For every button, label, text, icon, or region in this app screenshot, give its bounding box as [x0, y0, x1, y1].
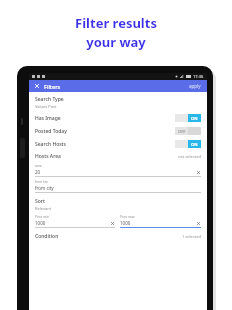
staticText: 20	[35, 169, 41, 175]
button[interactable]: Price max	[120, 215, 201, 228]
staticText: ON	[191, 116, 198, 121]
staticText: apply	[189, 83, 201, 89]
staticText: not selected	[178, 154, 201, 159]
staticText: ON	[191, 142, 198, 147]
staticText: Has Image	[35, 115, 61, 122]
button[interactable]: Sort	[35, 198, 201, 211]
staticText: Posted Today	[35, 128, 67, 135]
staticText: 1 selected	[182, 234, 201, 239]
staticText: Values Post	[35, 104, 57, 109]
staticText: OFF	[178, 129, 186, 134]
staticText: Condition	[35, 233, 59, 240]
staticText: your way	[86, 33, 146, 51]
button[interactable]: from km	[35, 180, 201, 193]
staticText: 1000	[35, 220, 46, 226]
staticText: area	[35, 164, 42, 168]
button[interactable]: Has Image	[35, 114, 201, 122]
staticText: Price min	[35, 215, 49, 219]
staticText: 17:36	[193, 74, 204, 79]
staticText: 1000	[120, 220, 131, 226]
button[interactable]: Clear	[196, 221, 201, 226]
staticText: Search Type	[35, 96, 64, 103]
staticText: Filters	[44, 83, 61, 90]
staticText: Price max	[120, 215, 135, 219]
button[interactable]: Hosts Area	[35, 153, 201, 160]
button[interactable]: apply	[187, 82, 203, 90]
staticText: from km	[35, 180, 48, 184]
button[interactable]: Close	[33, 82, 41, 90]
button[interactable]: Clear	[110, 221, 115, 226]
button[interactable]: Posted Today	[35, 127, 201, 135]
staticText: Search Hosts	[35, 141, 66, 148]
button[interactable]: Clear	[196, 170, 201, 175]
button[interactable]: area	[35, 164, 201, 177]
staticText: Hosts Area	[35, 153, 61, 160]
staticText: Relevant	[35, 206, 52, 211]
button[interactable]: Search Type	[35, 96, 201, 109]
button[interactable]: Price min	[35, 215, 115, 228]
staticText: Filter results	[75, 14, 157, 32]
staticText: from city	[35, 185, 54, 191]
staticText: Sort	[35, 198, 45, 205]
button[interactable]: Condition	[35, 233, 201, 240]
button[interactable]: Search Hosts	[35, 140, 201, 148]
